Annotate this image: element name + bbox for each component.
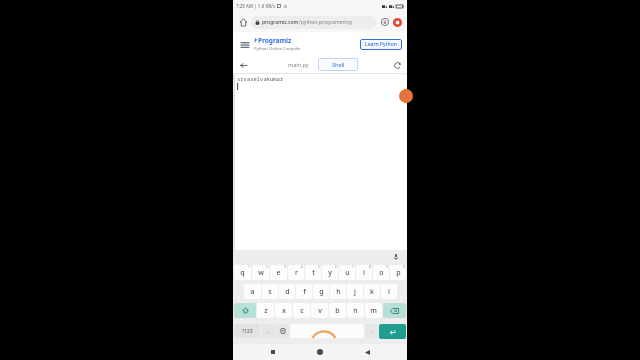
staticText: 8 <box>369 265 371 269</box>
button[interactable]: a <box>244 284 261 299</box>
staticText: /python-programming <box>299 19 352 26</box>
staticText: 9 <box>386 265 388 269</box>
staticText: o <box>379 268 384 278</box>
button[interactable]: 9 <box>373 265 389 280</box>
button[interactable]: main.py <box>282 58 315 71</box>
button[interactable]: ?123 <box>234 324 260 338</box>
staticText: Programiz <box>258 36 292 45</box>
button[interactable]: 8 <box>356 265 372 280</box>
staticText: x <box>282 306 286 316</box>
button[interactable]: l <box>381 284 397 299</box>
button[interactable]: 7 <box>339 265 355 280</box>
staticText: 0 <box>403 265 405 269</box>
staticText: f <box>303 287 306 297</box>
button[interactable]: . <box>365 324 378 338</box>
button[interactable]: g <box>313 284 329 299</box>
staticText: ≡ <box>283 3 288 9</box>
staticText: n <box>353 306 358 316</box>
staticText: 7:28 AM | 1.6 KB/s <box>236 3 275 9</box>
staticText: 2 <box>266 265 268 269</box>
staticText: u <box>345 268 350 278</box>
button[interactable]: Refresh <box>391 59 403 71</box>
button[interactable]: Shift <box>234 303 256 318</box>
button[interactable]: 3 <box>270 265 287 280</box>
button[interactable]: f <box>296 284 312 299</box>
button[interactable]: v <box>311 303 328 318</box>
staticText: Python Online Compiler <box>254 46 301 52</box>
button[interactable]: n <box>347 303 364 318</box>
button[interactable]: b <box>329 303 346 318</box>
staticText: h <box>336 287 341 297</box>
staticText: l <box>388 287 390 297</box>
button[interactable]: k <box>364 284 380 299</box>
button[interactable]: Recent apps <box>266 345 280 359</box>
button[interactable]: m <box>365 303 382 318</box>
button[interactable]: h <box>330 284 346 299</box>
staticText: j <box>354 287 356 297</box>
button[interactable]: z <box>257 303 274 318</box>
staticText: p <box>396 268 401 278</box>
button[interactable]: 2 <box>252 265 269 280</box>
staticText: programiz.com <box>262 19 299 26</box>
button[interactable]: programiz.com <box>251 16 377 29</box>
staticText: m <box>370 306 377 316</box>
staticText: 1 <box>248 265 250 269</box>
button[interactable]: 6 <box>322 265 338 280</box>
staticText: r <box>295 268 298 278</box>
button[interactable]: s <box>262 284 278 299</box>
button[interactable]: Home <box>237 16 249 28</box>
staticText: a <box>250 287 255 297</box>
staticText: s <box>268 287 272 297</box>
button[interactable]: d <box>279 284 295 299</box>
button[interactable]: Backspace <box>383 303 406 318</box>
staticText: e <box>276 268 281 278</box>
button[interactable]: , <box>261 324 275 338</box>
staticText: Learn Python <box>365 41 397 48</box>
staticText: 6 <box>335 265 337 269</box>
staticText: 5 <box>318 265 320 269</box>
button[interactable]: Emoji <box>276 324 289 338</box>
staticText: 7 <box>352 265 354 269</box>
button[interactable]: Shell <box>318 58 358 71</box>
button[interactable]: 4 <box>288 265 304 280</box>
staticText: i <box>363 268 365 278</box>
staticText: b <box>335 306 340 316</box>
staticText: Shell <box>332 61 345 68</box>
button[interactable]: 5 <box>305 265 321 280</box>
staticText: main.py <box>288 61 309 68</box>
staticText: z <box>264 306 268 316</box>
button[interactable]: j <box>347 284 363 299</box>
staticText: t <box>312 268 315 278</box>
staticText: d <box>285 287 290 297</box>
button[interactable]: Space <box>290 324 364 338</box>
button[interactable]: Home <box>313 345 327 359</box>
staticText: , <box>267 327 269 335</box>
staticText: . <box>371 327 373 335</box>
staticText: sivaselvakumar <box>237 75 284 82</box>
staticText: 4 <box>301 265 303 269</box>
button[interactable]: Downloads <box>379 16 391 28</box>
staticText: q <box>240 268 245 278</box>
button[interactable]: Back <box>360 345 374 359</box>
button[interactable]: Learn Python <box>360 39 402 50</box>
button[interactable]: x <box>275 303 292 318</box>
button[interactable]: Profile <box>392 17 403 28</box>
staticText: k <box>370 287 374 297</box>
staticText: y <box>328 268 332 278</box>
button[interactable]: c <box>293 303 310 318</box>
staticText: c <box>300 306 304 316</box>
staticText: w <box>258 268 264 278</box>
staticText: v <box>318 306 322 316</box>
staticText: g <box>319 287 324 297</box>
staticText: 3 <box>284 265 286 269</box>
button[interactable]: 0 <box>390 265 406 280</box>
button[interactable]: Enter <box>379 324 406 339</box>
button[interactable]: Voice input <box>391 252 401 262</box>
staticText: ?123 <box>242 328 253 335</box>
button[interactable]: Back <box>237 59 249 71</box>
button[interactable]: 1 <box>234 265 251 280</box>
button[interactable]: Run <box>399 89 413 103</box>
button[interactable]: Menu <box>238 38 251 51</box>
